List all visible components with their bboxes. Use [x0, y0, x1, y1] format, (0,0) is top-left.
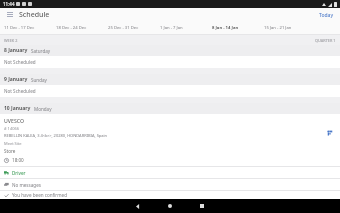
- button[interactable]: Not Scheduled: [0, 56, 340, 68]
- staticText: REBELLIN KALEA, 3 4<br>, 20280, HONDARRI…: [4, 133, 108, 138]
- staticText: Not Scheduled: [4, 59, 36, 65]
- staticText: 9 January: [4, 76, 28, 83]
- button[interactable]: You have been confirmed: [0, 191, 340, 199]
- button[interactable]: 1 Jan - 7 Jan: [160, 22, 212, 34]
- staticText: WEEK 2: [4, 38, 18, 43]
- button[interactable]: 25 Dec - 31 Dec: [108, 22, 160, 34]
- button[interactable]: Driver: [0, 167, 340, 178]
- staticText: 8 Jan - 14 Jan: [212, 25, 239, 31]
- button[interactable]: 15 Jan - 21 Jan: [264, 22, 316, 34]
- staticText: # 14066: [4, 126, 20, 131]
- staticText: 15 Jan - 21 Jan: [264, 25, 292, 31]
- button[interactable]: Back: [130, 199, 146, 213]
- staticText: Today: [319, 12, 334, 19]
- staticText: Sunday: [31, 77, 47, 83]
- button[interactable]: 18 Dec - 24 Dec: [56, 22, 108, 34]
- button[interactable]: Home: [162, 199, 178, 213]
- button[interactable]: UVESCO: [0, 114, 340, 166]
- staticText: 11 Dec - 17 Dec: [4, 25, 35, 31]
- staticText: You have been confirmed: [12, 192, 67, 198]
- staticText: Not Scheduled: [4, 88, 36, 94]
- button[interactable]: Recent apps: [194, 199, 210, 213]
- staticText: Meet Site: [4, 141, 22, 146]
- staticText: 8 January: [4, 47, 28, 54]
- staticText: 25 Dec - 31 Dec: [108, 25, 139, 31]
- staticText: Saturday: [31, 48, 51, 54]
- staticText: Store: [4, 148, 16, 154]
- staticText: 11:44: [3, 1, 15, 7]
- button[interactable]: 11 Dec - 17 Dec: [4, 22, 56, 34]
- button[interactable]: 10 January: [0, 103, 340, 114]
- staticText: No messages: [12, 182, 41, 188]
- staticText: Monday: [34, 106, 52, 112]
- button[interactable]: Today: [316, 10, 337, 21]
- staticText: UVESCO: [4, 117, 25, 124]
- staticText: 18:00: [12, 157, 24, 163]
- button[interactable]: 8 Jan - 14 Jan: [212, 22, 264, 34]
- staticText: Driver: [12, 170, 26, 176]
- button[interactable]: Not Scheduled: [0, 85, 340, 97]
- button[interactable]: 9 January: [0, 74, 340, 85]
- staticText: QUARTER 1: [315, 38, 336, 43]
- staticText: 1 Jan - 7 Jan: [160, 25, 183, 31]
- button[interactable]: Directions: [325, 128, 334, 137]
- staticText: 18 Dec - 24 Dec: [56, 25, 87, 31]
- staticText: 10 January: [4, 105, 31, 112]
- button[interactable]: 8 January: [0, 45, 340, 56]
- button[interactable]: No messages: [0, 179, 340, 190]
- button[interactable]: Open navigation menu: [5, 10, 15, 20]
- staticText: Schedule: [19, 10, 50, 20]
